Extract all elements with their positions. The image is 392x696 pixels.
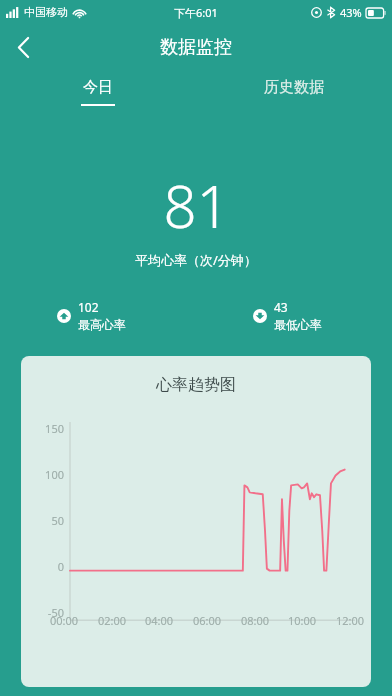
staticText: 0: [21, 559, 64, 574]
staticText: 下午6:01: [174, 5, 218, 20]
staticText: 平均心率（次/分钟）: [135, 251, 257, 269]
staticText: 最低心率: [274, 317, 322, 332]
button[interactable]: 43: [253, 299, 322, 332]
staticText: 02:00: [98, 613, 127, 628]
staticText: -50: [21, 605, 64, 620]
staticText: 102: [78, 299, 99, 315]
staticText: 06:00: [193, 613, 222, 628]
staticText: 50: [21, 513, 64, 528]
staticText: 43%: [340, 5, 362, 20]
staticText: 中国移动: [24, 5, 68, 19]
staticText: 81: [163, 166, 230, 245]
staticText: 08:00: [241, 613, 270, 628]
button[interactable]: 心率趋势图: [21, 356, 371, 687]
staticText: 心率趋势图: [21, 375, 371, 395]
button[interactable]: Back: [0, 24, 46, 70]
staticText: 今日: [83, 78, 113, 97]
staticText: 数据监控: [160, 36, 232, 59]
staticText: 最高心率: [78, 317, 126, 332]
button[interactable]: 历史数据: [196, 70, 392, 114]
button[interactable]: 今日: [0, 70, 196, 114]
staticText: 150: [21, 421, 64, 436]
staticText: 100: [21, 467, 64, 482]
button[interactable]: 102: [57, 299, 126, 332]
staticText: 04:00: [145, 613, 174, 628]
staticText: 00:00: [50, 613, 79, 628]
staticText: 10:00: [288, 613, 317, 628]
staticText: 12:00: [336, 613, 365, 628]
staticText: 历史数据: [264, 78, 324, 97]
staticText: 43: [274, 299, 288, 315]
